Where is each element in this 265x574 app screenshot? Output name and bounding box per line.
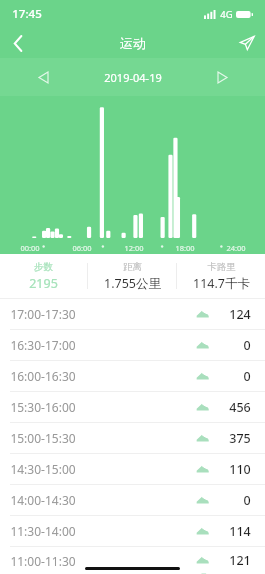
staticText: 0 [243, 337, 251, 354]
staticText: 11:30-14:00 [10, 523, 76, 539]
button[interactable]: Back [0, 28, 36, 58]
button[interactable]: 11:00-11:30 [0, 547, 265, 574]
staticText: 110 [229, 461, 251, 478]
staticText: 114.7千卡 [193, 275, 250, 292]
staticText: 375 [229, 430, 251, 447]
staticText: 06:00 [72, 243, 92, 253]
staticText: 124 [229, 306, 251, 323]
staticText: 14:30-15:00 [10, 461, 76, 477]
button[interactable]: Share [229, 28, 265, 58]
staticText: 0 [243, 492, 251, 509]
staticText: 18:00 [175, 243, 195, 253]
staticText: 121 [229, 552, 251, 569]
staticText: 1.755公里 [104, 275, 161, 292]
staticText: 步数 [34, 261, 53, 273]
staticText: 11:00-11:30 [10, 553, 76, 569]
staticText: 2019-04-19 [104, 70, 162, 85]
staticText: 456 [229, 399, 251, 416]
staticText: 14:00-14:30 [10, 492, 76, 508]
staticText: 距离 [123, 261, 142, 273]
button[interactable]: 距离 [88, 254, 176, 298]
button[interactable]: 17:00-17:30 [0, 299, 265, 329]
staticText: 2195 [29, 275, 58, 292]
staticText: 24:00 [226, 243, 246, 253]
button[interactable]: 16:00-16:30 [0, 361, 265, 391]
button[interactable]: 步数 [0, 254, 87, 298]
button[interactable]: 15:30-16:00 [0, 392, 265, 422]
staticText: 卡路里 [207, 261, 236, 273]
staticText: 0 [243, 368, 251, 385]
staticText: 12:00 [124, 243, 144, 253]
button[interactable]: Next day [211, 66, 233, 88]
staticText: 16:00-16:30 [10, 368, 76, 384]
staticText: 运动 [120, 35, 146, 51]
button[interactable]: 卡路里 [177, 254, 265, 298]
staticText: 17:00-17:30 [10, 306, 76, 322]
staticText: 4G [220, 8, 233, 21]
button[interactable]: 14:00-14:30 [0, 485, 265, 515]
staticText: 114 [229, 523, 251, 540]
staticText: 15:30-16:00 [10, 399, 76, 415]
staticText: 17:45 [12, 6, 42, 22]
button[interactable]: Previous day [32, 66, 54, 88]
staticText: 16:30-17:00 [10, 337, 76, 353]
button[interactable]: 15:00-15:30 [0, 423, 265, 453]
button[interactable]: 11:30-14:00 [0, 516, 265, 546]
staticText: 15:00-15:30 [10, 430, 76, 446]
button[interactable]: 14:30-15:00 [0, 454, 265, 484]
button[interactable]: 16:30-17:00 [0, 330, 265, 360]
staticText: 00:00 [20, 243, 40, 253]
